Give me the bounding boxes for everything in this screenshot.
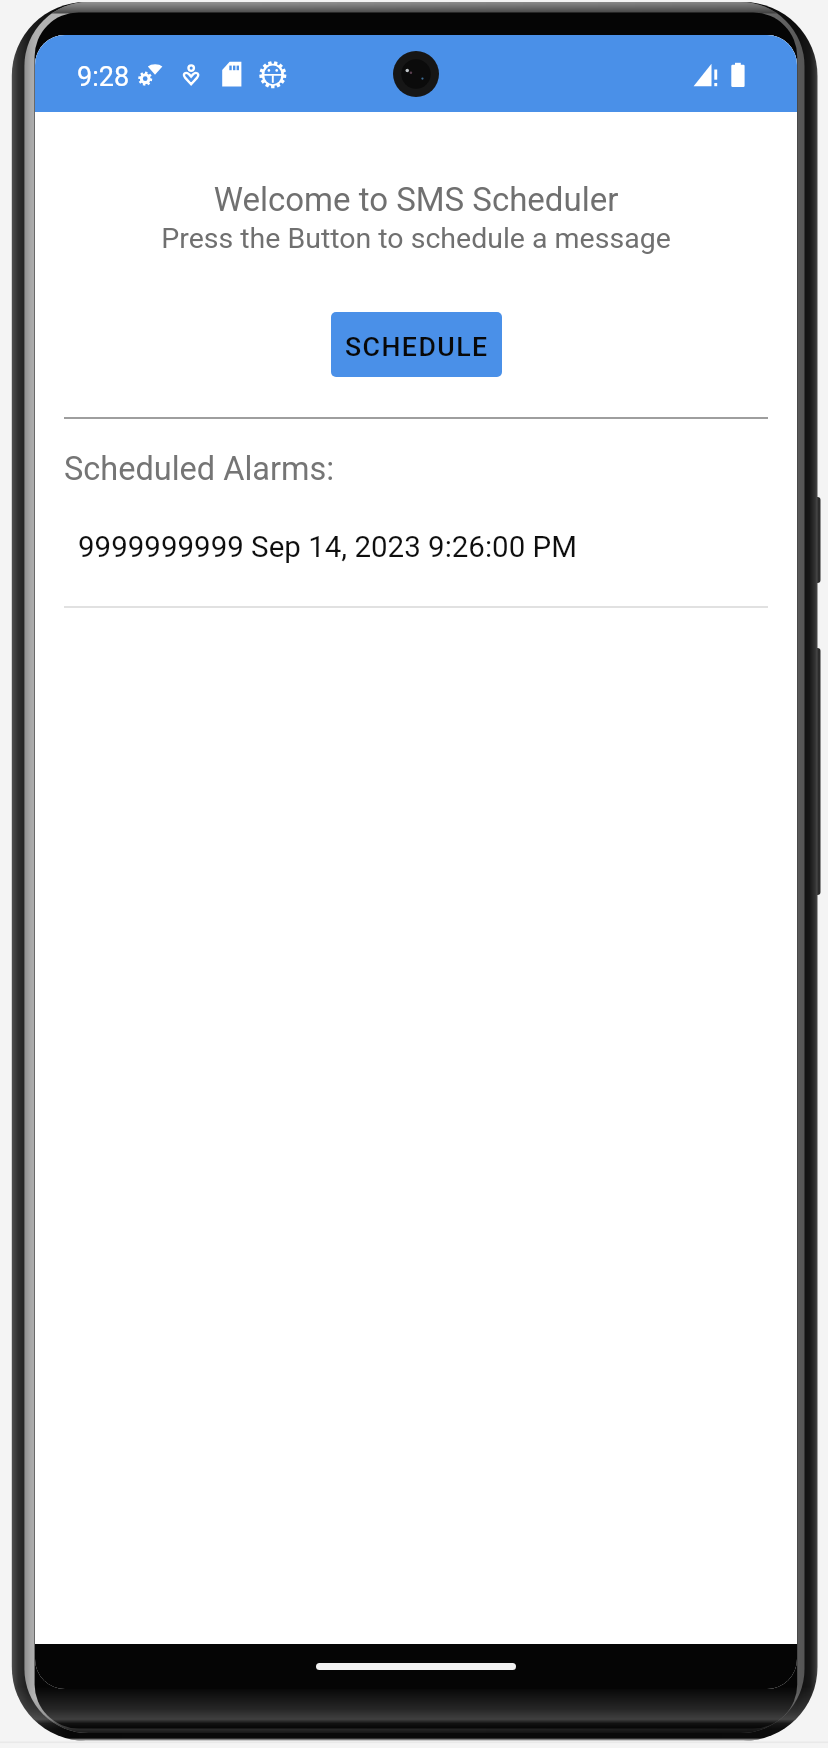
other: Home <box>316 1663 516 1670</box>
staticText: SCHEDULE <box>345 331 489 362</box>
staticText: 9:28 <box>77 61 130 93</box>
staticText: Scheduled Alarms: <box>64 450 335 488</box>
other: Front camera <box>393 51 439 97</box>
button[interactable]: 9999999999 Sep 14, 2023 9:26:00 PM <box>68 530 728 565</box>
staticText: 9999999999 Sep 14, 2023 9:26:00 PM <box>78 530 577 565</box>
staticText: Welcome to SMS Scheduler <box>35 180 797 219</box>
staticText: Press the Button to schedule a message <box>35 222 797 255</box>
button[interactable]: SCHEDULE <box>331 312 502 377</box>
